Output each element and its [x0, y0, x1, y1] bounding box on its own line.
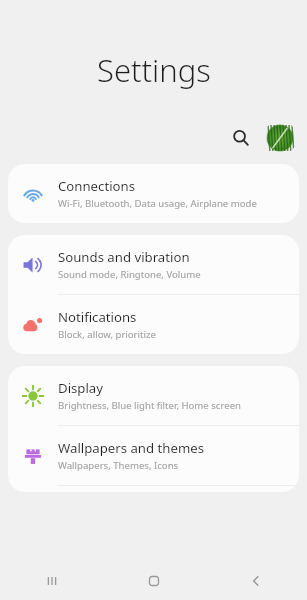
- button[interactable]: Account: [263, 121, 297, 155]
- button[interactable]: Sounds and vibration: [8, 235, 299, 294]
- button[interactable]: Wallpapers and themes: [8, 426, 299, 485]
- button[interactable]: Search: [224, 121, 258, 155]
- staticText: Settings: [97, 49, 211, 91]
- staticText: Sound mode, Ringtone, Volume: [58, 268, 201, 281]
- staticText: Wallpapers, Themes, Icons: [58, 459, 179, 472]
- button[interactable]: Back: [205, 562, 307, 600]
- staticText: Notifications: [58, 308, 137, 326]
- staticText: Wi-Fi, Bluetooth, Data usage, Airplane m…: [58, 197, 257, 210]
- staticText: Connections: [58, 177, 135, 195]
- button[interactable]: Home: [103, 562, 205, 600]
- button[interactable]: Display: [8, 366, 299, 425]
- staticText: Sounds and vibration: [58, 248, 190, 266]
- button[interactable]: Connections: [8, 164, 299, 223]
- staticText: Block, allow, prioritize: [58, 328, 156, 341]
- staticText: Display: [58, 379, 103, 397]
- staticText: Wallpapers and themes: [58, 439, 204, 457]
- button[interactable]: Recents: [0, 562, 103, 600]
- staticText: Brightness, Blue light filter, Home scre…: [58, 399, 241, 412]
- button[interactable]: Notifications: [8, 295, 299, 354]
